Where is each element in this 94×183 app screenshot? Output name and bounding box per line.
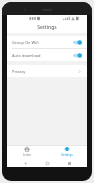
button[interactable]: Privacy (7, 65, 87, 77)
button[interactable]: Home (43, 159, 51, 167)
staticText: Index (23, 153, 31, 157)
button[interactable]: Settings (47, 145, 87, 158)
button[interactable]: Group On Wifi (7, 36, 87, 48)
button[interactable]: Index (7, 145, 47, 158)
button[interactable]: Toggle (73, 40, 82, 45)
staticText: Group On Wifi (12, 40, 73, 45)
button[interactable]: Auto download (7, 49, 87, 61)
button[interactable]: Toggle (73, 53, 82, 58)
staticText: Privacy (12, 69, 77, 74)
staticText: Settings (37, 24, 57, 31)
button[interactable]: Back (21, 159, 29, 167)
staticText: Settings (61, 153, 73, 157)
staticText: Auto download (12, 53, 73, 58)
button[interactable]: Recents (65, 159, 73, 167)
